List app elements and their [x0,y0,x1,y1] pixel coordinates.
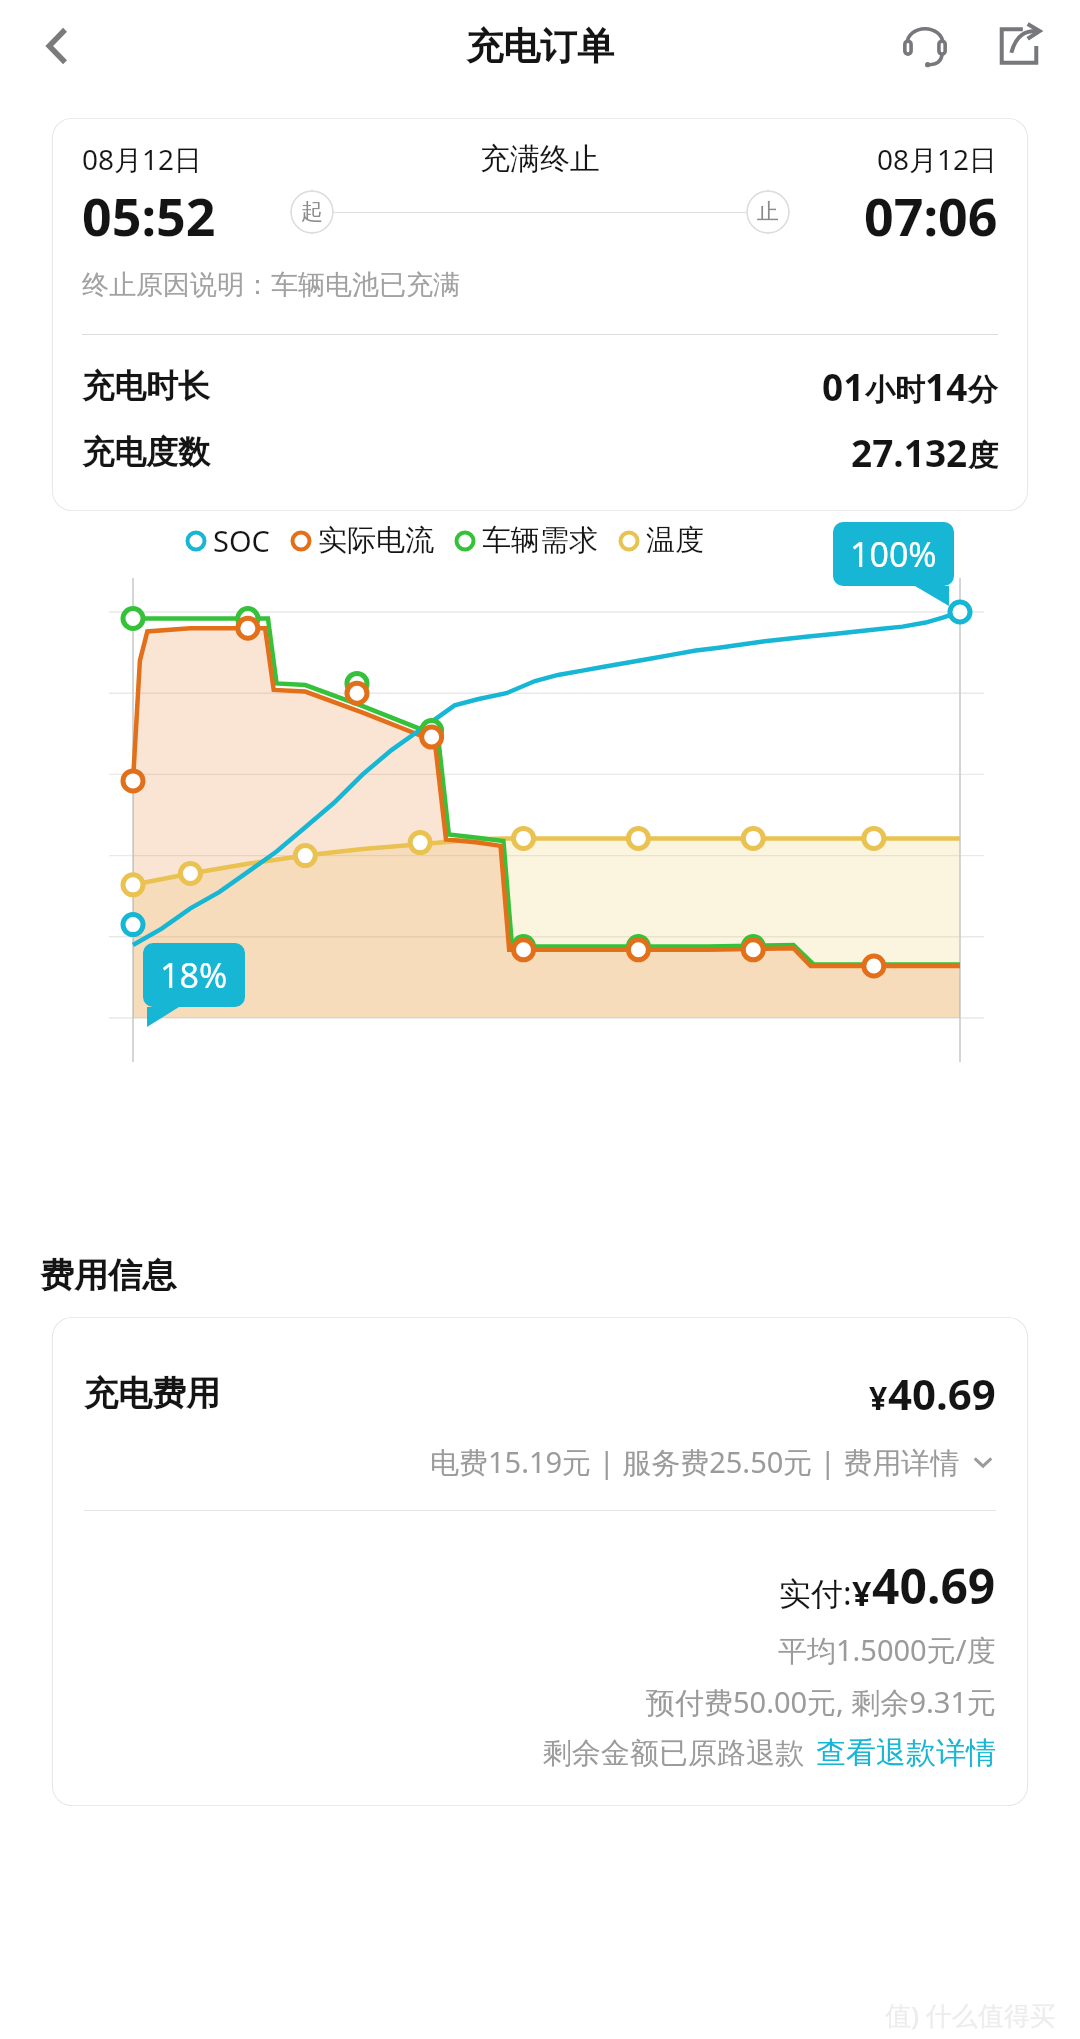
staticText: 度 [968,437,998,475]
staticText: ¥ [869,1376,888,1420]
staticText: 起 [301,198,323,226]
staticText: 平均1.5000元/度 [778,1630,996,1670]
button[interactable]: 客服 [888,9,962,83]
staticText: 剩余金额已原路退款 [543,1735,804,1772]
staticText: 充电度数 [82,432,210,472]
staticText: 预付费50.00元, 剩余9.31元 [646,1682,996,1722]
staticText: 充电订单 [466,23,614,70]
staticText: 费用信息 [40,1254,176,1297]
staticText: 08月12日 [877,140,998,178]
staticText: 40.69 [872,1553,996,1618]
staticText: 18% [160,952,228,998]
staticText: 电费15.19元 | 服务费25.50元 | 费用详情 [430,1442,960,1482]
staticText: SOC [213,521,270,560]
button[interactable]: 充电费用 [52,1317,1028,1806]
staticText: ¥ [852,1570,872,1616]
staticText: 温度 [646,522,704,559]
button[interactable]: 充满终止 [52,118,1028,511]
button[interactable]: 查看退款详情 [816,1734,996,1772]
staticText: 查看退款详情 [816,1734,996,1772]
staticText: 充电费用 [84,1372,220,1415]
staticText: 实付: [779,1571,852,1615]
staticText: 小时 [865,371,925,409]
staticText: 05:52 [82,180,216,251]
button[interactable]: 分享 [982,9,1056,83]
staticText: 07:06 [864,180,998,251]
staticText: 止 [757,198,779,226]
staticText: 车辆需求 [482,522,598,559]
staticText: 27.132 [851,427,968,477]
staticText: 实际电流 [318,522,434,559]
staticText: 充电时长 [82,366,210,406]
staticText: 08月12日 [82,140,203,178]
staticText: 01 [822,361,865,411]
staticText: 分 [968,371,998,409]
staticText: 充满终止 [480,140,600,178]
staticText: 40.69 [888,1365,996,1422]
staticText: 100% [850,531,937,577]
button[interactable]: 返回 [20,8,96,84]
staticText: 终止原因说明：车辆电池已充满 [82,268,460,302]
staticText: 14 [925,361,968,411]
staticText: 值) 什么值得买 [885,1997,1056,2033]
